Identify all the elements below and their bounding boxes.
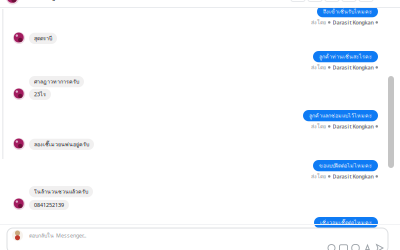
- staticText: ขอแบบฝึดต่อไม่ไหมคะ: [319, 161, 372, 170]
- staticText: Darasit Kongkan: [332, 123, 373, 130]
- button[interactable]: Emoji: [326, 243, 337, 250]
- button[interactable]: ศาลฎาวทาการครับ: [29, 76, 84, 87]
- button[interactable]: 23ไร: [29, 89, 51, 100]
- button[interactable]: Send: [374, 243, 385, 250]
- staticText: ลูกค้าท่านเชิ่นสะไรคะ: [319, 52, 372, 61]
- button[interactable]: ตอบกลับใน Messenger...: [7, 228, 388, 243]
- staticText: ในล้านวนชวนแล้วครับ: [34, 187, 88, 196]
- button[interactable]: 0841252139: [29, 200, 69, 210]
- staticText: ลูกค้าแลกช่อมแบไว้ไหมคะ: [309, 111, 372, 120]
- button[interactable]: GIF: [362, 243, 373, 250]
- button[interactable]: ลูกค้าแลกช่อมแบไว้ไหมคะ: [303, 110, 378, 121]
- staticText: ศาลฎาวทาการครับ: [34, 77, 79, 86]
- button[interactable]: ในล้านวนชวนแล้วครับ: [29, 186, 93, 197]
- button[interactable]: Search: [291, 0, 305, 1]
- button[interactable]: Sticker: [350, 243, 361, 250]
- staticText: ส่งโดย: [311, 18, 326, 27]
- staticText: เชิ่งวอมเชิ๊ดต่อไหมคะ: [320, 218, 372, 227]
- staticText: Darasit Kongkan: [332, 64, 373, 71]
- staticText: ตอบกลับใน Messenger...: [29, 231, 86, 240]
- button[interactable]: สุดตราบี: [29, 33, 57, 44]
- button[interactable]: Label: [342, 0, 356, 1]
- staticText: Darasit Kongkan: [332, 19, 373, 26]
- button[interactable]: เชิ่งวอมเชิ๊ดต่อไหมคะ: [314, 217, 378, 228]
- button[interactable]: More: [359, 0, 373, 1]
- button[interactable]: Call: [308, 0, 322, 1]
- button[interactable]: Darasit Kongkan: [6, 0, 64, 8]
- staticText: ถึงเข้าเชิ่นรับไหมคะ: [323, 7, 372, 16]
- staticText: ส่งโดย: [311, 122, 326, 131]
- staticText: ส่งโดย: [311, 63, 326, 72]
- staticText: ส่งโดย: [311, 172, 326, 181]
- button[interactable]: Video: [325, 0, 339, 1]
- staticText: ลองเชิ๊เมวยนพ่นอยู่ครับ: [34, 140, 89, 148]
- button[interactable]: ลูกค้าท่านเชิ่นสะไรคะ: [313, 51, 378, 62]
- staticText: 23ไร: [34, 90, 46, 98]
- staticText: Darasit Kongkan: [332, 173, 373, 180]
- button[interactable]: ถึงเข้าเชิ่นรับไหมคะ: [317, 6, 378, 17]
- button[interactable]: ลองเชิ๊เมวยนพ่นอยู่ครับ: [29, 139, 94, 150]
- button[interactable]: ขอแบบฝึดต่อไม่ไหมคะ: [313, 160, 378, 171]
- button[interactable]: Photo: [338, 243, 349, 250]
- staticText: Darasit Kongkan: [23, 0, 64, 2]
- staticText: สุดตราบี: [34, 34, 52, 42]
- staticText: 0841252139: [34, 201, 64, 208]
